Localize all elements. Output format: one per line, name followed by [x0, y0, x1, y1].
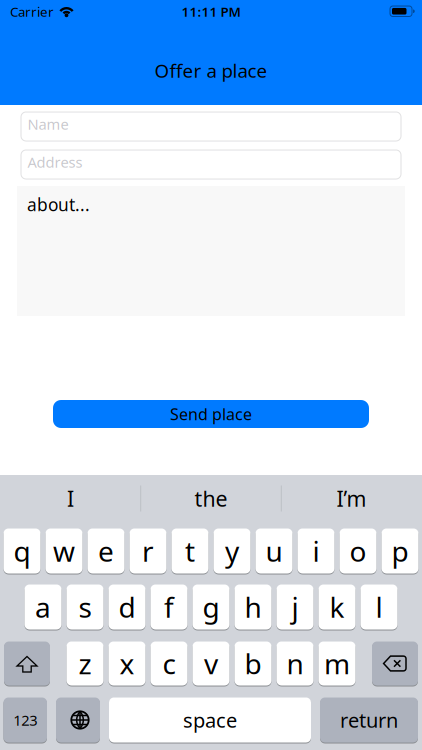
staticText: w: [53, 532, 75, 570]
button[interactable]: I’m: [282, 474, 421, 518]
staticText: e: [98, 532, 114, 570]
button[interactable]: Delete: [372, 641, 418, 685]
button[interactable]: space: [109, 697, 311, 742]
staticText: 123: [13, 710, 37, 730]
staticText: about...: [27, 193, 90, 216]
staticText: space: [183, 707, 237, 733]
staticText: m: [324, 645, 350, 682]
button[interactable]: j: [276, 584, 313, 629]
staticText: Offer a place: [154, 58, 267, 83]
staticText: a: [35, 588, 51, 626]
button[interactable]: o: [339, 528, 376, 573]
button[interactable]: p: [381, 528, 418, 573]
staticText: Name: [27, 114, 68, 134]
staticText: h: [244, 588, 261, 626]
button[interactable]: i: [297, 528, 334, 573]
staticText: y: [225, 532, 239, 570]
staticText: g: [202, 588, 219, 626]
staticText: return: [340, 707, 398, 733]
button[interactable]: l: [360, 584, 397, 629]
button[interactable]: e: [87, 528, 124, 573]
staticText: u: [265, 532, 282, 570]
button[interactable]: q: [3, 528, 40, 573]
button[interactable]: v: [192, 641, 229, 685]
staticText: s: [78, 588, 91, 626]
button[interactable]: the: [141, 474, 281, 518]
staticText: p: [391, 532, 408, 570]
staticText: Send place: [170, 403, 252, 425]
button[interactable]: return: [320, 697, 418, 742]
button[interactable]: Name: [0, 112, 422, 141]
button[interactable]: about...: [0, 186, 422, 316]
button[interactable]: Next keyboard: [56, 697, 100, 742]
button[interactable]: y: [213, 528, 250, 573]
button[interactable]: Send place: [53, 400, 369, 428]
staticText: n: [286, 645, 303, 682]
staticText: z: [78, 645, 91, 682]
button[interactable]: Address: [0, 150, 422, 179]
button[interactable]: r: [129, 528, 166, 573]
staticText: l: [375, 588, 382, 626]
staticText: c: [162, 645, 175, 682]
staticText: x: [119, 645, 134, 682]
staticText: Address: [27, 152, 82, 172]
staticText: t: [185, 532, 195, 570]
staticText: j: [291, 588, 298, 626]
staticText: the: [194, 484, 227, 513]
button[interactable]: n: [276, 641, 313, 685]
button[interactable]: d: [108, 584, 145, 629]
button[interactable]: Shift: [4, 641, 50, 685]
button[interactable]: I: [1, 474, 140, 518]
button[interactable]: g: [192, 584, 229, 629]
staticText: Carrier: [10, 3, 54, 20]
button[interactable]: z: [66, 641, 103, 685]
button[interactable]: u: [255, 528, 292, 573]
button[interactable]: c: [150, 641, 187, 685]
button[interactable]: h: [234, 584, 271, 629]
button[interactable]: 123: [3, 697, 47, 742]
staticText: b: [244, 645, 261, 682]
button[interactable]: s: [66, 584, 103, 629]
staticText: k: [329, 588, 344, 626]
staticText: I: [67, 484, 74, 513]
staticText: d: [118, 588, 135, 626]
button[interactable]: x: [108, 641, 145, 685]
staticText: I’m: [337, 484, 367, 513]
staticText: i: [312, 532, 319, 570]
button[interactable]: m: [318, 641, 355, 685]
staticText: o: [349, 532, 366, 570]
staticText: 11:11 PM: [181, 3, 240, 20]
button[interactable]: w: [45, 528, 82, 573]
staticText: v: [204, 645, 218, 682]
button[interactable]: t: [171, 528, 208, 573]
button[interactable]: b: [234, 641, 271, 685]
button[interactable]: f: [150, 584, 187, 629]
staticText: q: [13, 532, 30, 570]
button[interactable]: k: [318, 584, 355, 629]
staticText: f: [164, 588, 174, 626]
staticText: r: [142, 532, 154, 570]
button[interactable]: a: [24, 584, 61, 629]
